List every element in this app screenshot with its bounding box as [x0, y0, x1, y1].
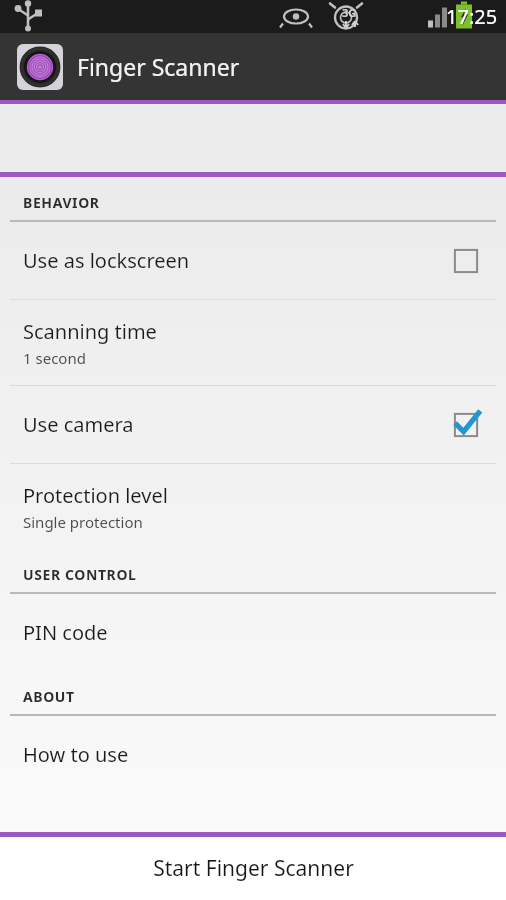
button[interactable]: Start Finger Scanner	[0, 837, 506, 900]
staticText: 17:25	[446, 3, 498, 30]
other: Use camera, checked	[449, 408, 483, 442]
button[interactable]: How to use	[0, 716, 506, 793]
staticText: BEHAVIOR	[23, 193, 100, 212]
staticText: How to use	[23, 741, 129, 768]
staticText: Use camera	[23, 411, 134, 438]
staticText: ABOUT	[23, 687, 75, 706]
staticText: 3G	[342, 5, 357, 20]
staticText: 1 second	[23, 348, 86, 368]
button[interactable]: Use as lockscreen	[0, 222, 506, 299]
other: Use as lockscreen, unchecked	[449, 244, 483, 278]
staticText: PIN code	[23, 619, 108, 646]
button[interactable]: PIN code	[0, 594, 506, 671]
staticText: Protection level	[23, 482, 168, 509]
button[interactable]: Use camera	[0, 386, 506, 463]
staticText: Scanning time	[23, 318, 157, 345]
staticText: Single protection	[23, 512, 143, 532]
staticText: USER CONTROL	[23, 565, 137, 584]
staticText: Finger Scanner	[77, 51, 240, 82]
button[interactable]: Scanning time	[0, 300, 506, 385]
staticText: Start Finger Scanner	[153, 854, 354, 883]
staticText: Use as lockscreen	[23, 247, 190, 274]
button[interactable]: Protection level	[0, 464, 506, 549]
